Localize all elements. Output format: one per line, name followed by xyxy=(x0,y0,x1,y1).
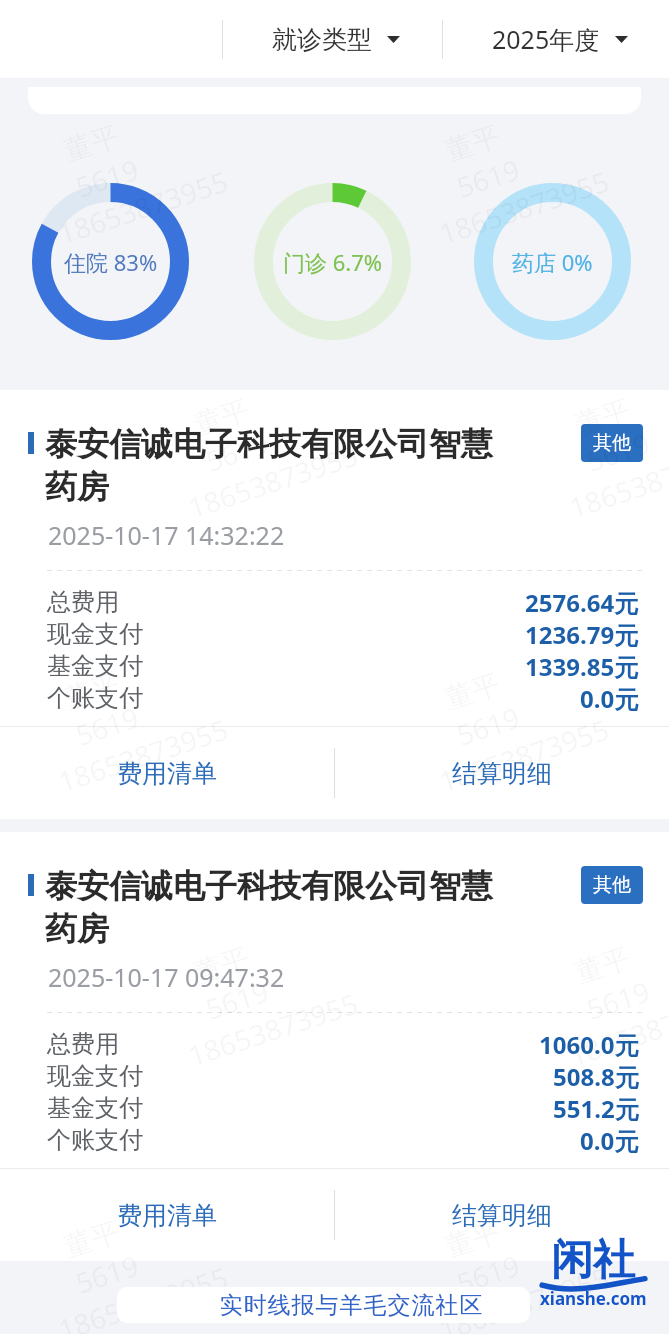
staticText: 5619 xyxy=(582,972,655,1028)
staticText: 董平 xyxy=(440,1214,505,1265)
staticText: 2025年度 xyxy=(492,22,600,56)
button[interactable]: 就诊类型 筛选 xyxy=(223,0,442,78)
button[interactable]: 结算明细 xyxy=(335,727,669,819)
staticText: 现金支付 xyxy=(47,1061,143,1091)
button[interactable]: 其他 xyxy=(581,866,643,904)
staticText: 5619 xyxy=(71,698,144,754)
staticText: 0.0元 xyxy=(580,682,639,714)
staticText: 1236.79元 xyxy=(525,618,639,650)
staticText: 门诊 6.7% xyxy=(283,247,383,277)
staticText: 泰安信诚电子科技有限公司智慧 药房 xyxy=(45,424,581,508)
staticText: 结算明细 xyxy=(452,1200,552,1231)
staticText: 董平 xyxy=(189,392,254,443)
staticText: 基金支付 xyxy=(47,651,143,681)
staticText: 总费用 xyxy=(47,1029,119,1059)
staticText: 2025-10-17 09:47:32 xyxy=(48,960,285,994)
staticText: 药店 0% xyxy=(512,247,593,277)
button[interactable]: 其他 xyxy=(581,424,643,462)
staticText: 5619 xyxy=(201,972,274,1028)
staticText: 1339.85元 xyxy=(525,650,639,682)
button[interactable]: 泰安信诚电子科技有限公司智慧 药房 xyxy=(0,832,669,1261)
staticText: 就诊类型 xyxy=(272,24,372,55)
staticText: 费用清单 xyxy=(117,1200,217,1231)
staticText: 18653873955 xyxy=(434,710,614,800)
staticText: 5619 xyxy=(71,1246,144,1302)
button[interactable]: 2025年度 筛选 xyxy=(443,0,668,78)
staticText: 2025-10-17 14:32:22 xyxy=(48,518,285,552)
staticText: 泰安信诚电子科技有限公司智慧 药房 xyxy=(45,866,581,950)
staticText: 5619 xyxy=(582,424,655,480)
staticText: 实时线报与羊毛交流社区 xyxy=(219,1291,483,1320)
staticText: 5619 xyxy=(452,150,525,206)
staticText: 个账支付 xyxy=(47,1125,143,1155)
staticText: xianshe.com xyxy=(540,1287,646,1310)
staticText: 508.8元 xyxy=(553,1060,639,1092)
staticText: 18653873955 xyxy=(183,436,363,526)
button[interactable]: 费用清单 xyxy=(0,727,334,819)
staticText: 0.0元 xyxy=(580,1124,639,1156)
staticText: 个账支付 xyxy=(47,683,143,713)
staticText: 18653873955 xyxy=(434,1258,614,1334)
button[interactable]: 结算明细 xyxy=(335,1169,669,1261)
staticText: 5619 xyxy=(201,424,274,480)
staticText: 551.2元 xyxy=(553,1092,639,1124)
staticText: 现金支付 xyxy=(47,619,143,649)
staticText: 18653873955 xyxy=(53,162,233,252)
staticText: 1060.0元 xyxy=(539,1028,639,1060)
staticText: 基金支付 xyxy=(47,1093,143,1123)
staticText: 18653873955 xyxy=(434,162,614,252)
staticText: 董平 xyxy=(59,1214,124,1265)
staticText: 董平 xyxy=(59,666,124,717)
staticText: 闲社 xyxy=(551,1234,635,1287)
staticText: 18653873955 xyxy=(183,984,363,1074)
button[interactable]: 实时线报与羊毛交流社区 xyxy=(117,1287,530,1323)
staticText: 结算明细 xyxy=(452,758,552,789)
staticText: 18653873955 xyxy=(53,710,233,800)
staticText: 2576.64元 xyxy=(525,586,639,618)
staticText: 其他 xyxy=(593,873,631,897)
staticText: 董平 xyxy=(570,392,635,443)
staticText: 5619 xyxy=(71,150,144,206)
staticText: 其他 xyxy=(593,431,631,455)
staticText: 总费用 xyxy=(47,587,119,617)
staticText: 18653873955 xyxy=(564,436,669,526)
button[interactable]: 泰安信诚电子科技有限公司智慧 药房 xyxy=(0,390,669,819)
staticText: 董平 xyxy=(189,940,254,991)
staticText: 费用清单 xyxy=(117,758,217,789)
staticText: 5619 xyxy=(452,1246,525,1302)
staticText: 住院 83% xyxy=(64,247,158,277)
button[interactable]: 费用清单 xyxy=(0,1169,334,1261)
staticText: 18653873955 xyxy=(564,984,669,1074)
staticText: 18653873955 xyxy=(53,1258,233,1334)
staticText: 5619 xyxy=(452,698,525,754)
